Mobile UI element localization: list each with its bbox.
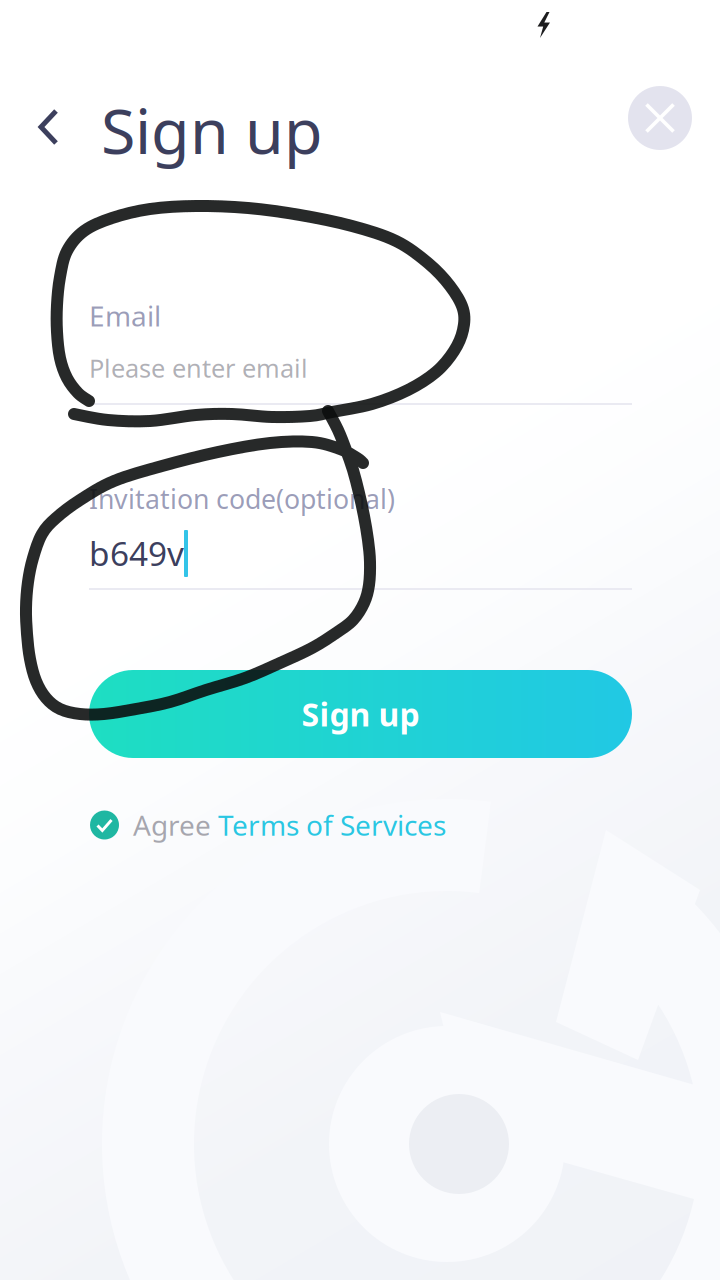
staticText: Invitation code(optional) — [89, 481, 395, 516]
staticText: Terms of Services — [218, 806, 446, 844]
staticText: Agree — [133, 806, 218, 844]
staticText: b649v — [89, 531, 184, 575]
button[interactable]: Agree — [90, 808, 490, 842]
staticText: Sign up — [301, 693, 419, 735]
staticText: Email — [89, 297, 161, 334]
staticText: Sign up — [101, 88, 323, 171]
button[interactable]: Close — [628, 86, 692, 150]
button[interactable]: Back — [24, 96, 86, 158]
button[interactable]: Sign up — [89, 670, 632, 758]
staticText: Please enter email — [89, 351, 308, 385]
